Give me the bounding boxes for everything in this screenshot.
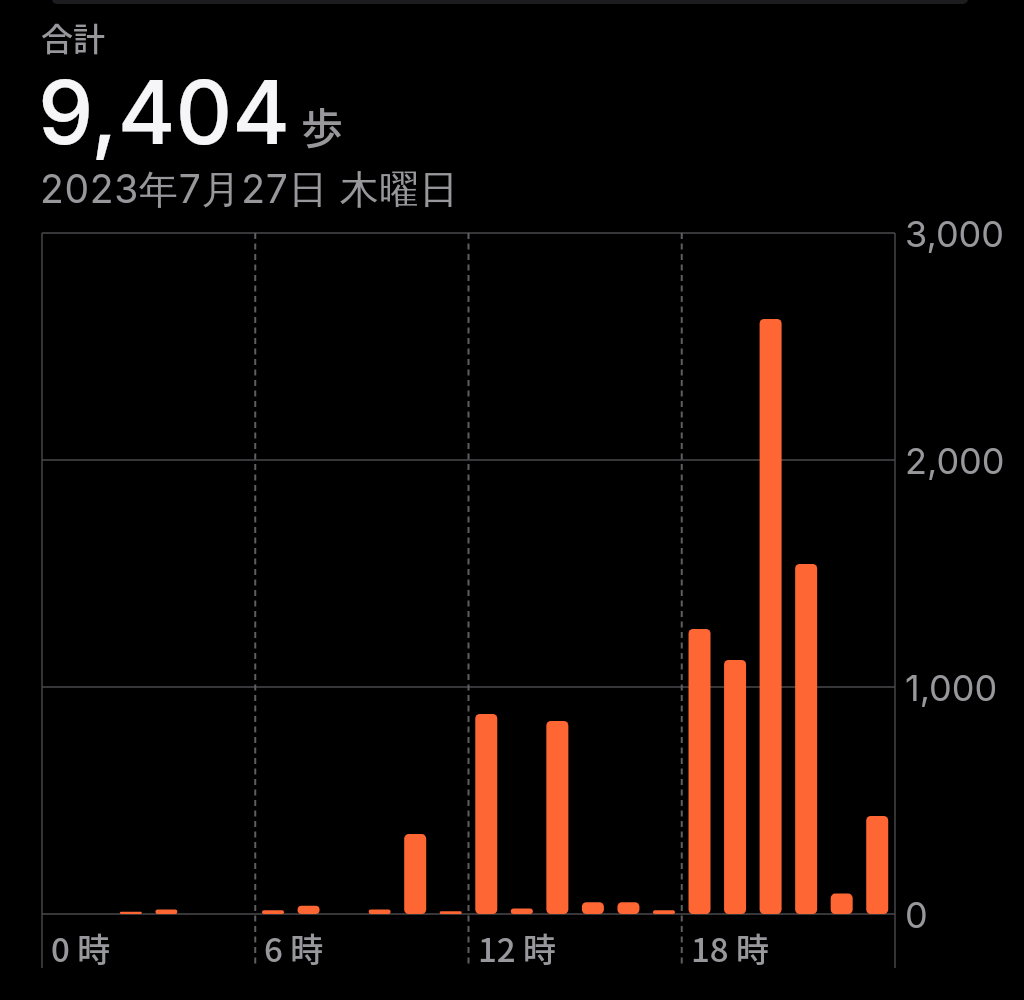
button[interactable]: 9,404 (38, 59, 291, 165)
button[interactable]: 6時 16歩 (255, 233, 291, 914)
button[interactable]: 4時 0歩 (184, 233, 220, 914)
staticText: 2,000 (905, 439, 1005, 483)
button[interactable]: 21時 1542歩 (788, 233, 824, 914)
staticText: 0 (905, 893, 928, 937)
staticText: 歩 (301, 95, 344, 156)
button[interactable]: 3時 20歩 (149, 233, 185, 914)
button[interactable]: 22時 90歩 (824, 233, 860, 914)
button[interactable]: 18時 1256歩 (682, 233, 718, 914)
staticText: 合計 (41, 14, 106, 60)
button[interactable]: 9時 20歩 (362, 233, 398, 914)
button[interactable]: 歩 (301, 95, 344, 156)
button[interactable]: 15時 52歩 (575, 233, 611, 914)
button[interactable]: 13時 24歩 (504, 233, 540, 914)
staticText: 3,000 (905, 212, 1005, 256)
staticText: 1,000 (905, 666, 998, 710)
button[interactable]: 5時 0歩 (220, 233, 256, 914)
staticText: 6 時 (264, 924, 324, 972)
staticText: 2023年7月27日 木曜日 (40, 165, 459, 214)
button[interactable]: 20時 2621歩 (753, 233, 789, 914)
button[interactable]: 11時 12歩 (433, 233, 469, 914)
button[interactable]: 2023年7月27日 木曜日 (40, 165, 459, 214)
button[interactable]: 10時 352歩 (397, 233, 433, 914)
staticText: 9,404 (38, 59, 291, 165)
button[interactable]: 12時 881歩 (469, 233, 505, 914)
staticText: 18 時 (691, 924, 770, 972)
button[interactable]: 2時 10歩 (113, 233, 149, 914)
button[interactable]: 23時 432歩 (859, 233, 895, 914)
button[interactable]: 0時 0歩 (42, 233, 78, 914)
staticText: 0 時 (51, 924, 111, 972)
button[interactable]: 1時 0歩 (78, 233, 114, 914)
button[interactable]: 7時 36歩 (291, 233, 327, 914)
button[interactable]: 14時 850歩 (540, 233, 576, 914)
button[interactable]: 8時 0歩 (326, 233, 362, 914)
button[interactable]: 合計 (41, 14, 106, 60)
button[interactable]: 19時 1119歩 (717, 233, 753, 914)
staticText: 12 時 (478, 924, 557, 972)
button[interactable]: 16時 52歩 (611, 233, 647, 914)
button[interactable]: 17時 16歩 (646, 233, 682, 914)
